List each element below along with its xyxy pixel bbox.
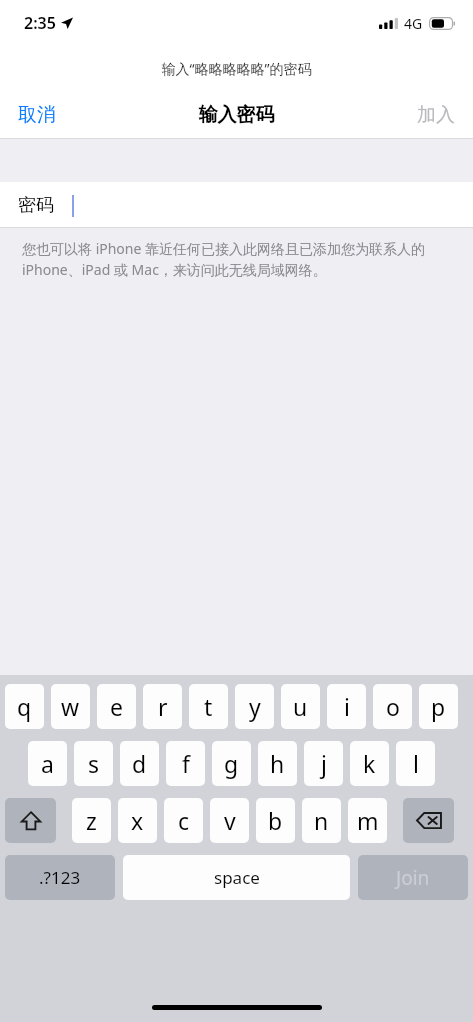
- staticText: y: [249, 691, 261, 722]
- staticText: Join: [396, 865, 430, 891]
- button[interactable]: m: [348, 798, 387, 843]
- staticText: 密码: [18, 194, 54, 217]
- staticText: v: [224, 805, 236, 836]
- button[interactable]: i: [327, 684, 366, 729]
- button[interactable]: b: [256, 798, 295, 843]
- button[interactable]: l: [396, 741, 435, 786]
- button[interactable]: q: [5, 684, 44, 729]
- staticText: .?123: [39, 866, 81, 889]
- staticText: 取消: [18, 103, 56, 127]
- staticText: 4G: [404, 14, 423, 33]
- staticText: z: [86, 805, 97, 836]
- button[interactable]: f: [166, 741, 205, 786]
- staticText: h: [270, 748, 285, 779]
- button[interactable]: s: [74, 741, 113, 786]
- button[interactable]: g: [212, 741, 251, 786]
- staticText: x: [131, 805, 144, 836]
- staticText: space: [214, 866, 260, 889]
- staticText: 2:35: [24, 12, 56, 34]
- button[interactable]: c: [164, 798, 203, 843]
- button[interactable]: r: [143, 684, 182, 729]
- button[interactable]: d: [120, 741, 159, 786]
- button[interactable]: 取消: [0, 93, 74, 137]
- staticText: a: [41, 748, 54, 779]
- button[interactable]: a: [28, 741, 67, 786]
- button[interactable]: u: [281, 684, 320, 729]
- staticText: 加入: [417, 103, 455, 127]
- button[interactable]: w: [51, 684, 90, 729]
- button[interactable]: .?123: [5, 855, 115, 900]
- button[interactable]: space: [123, 855, 350, 900]
- button[interactable]: n: [302, 798, 341, 843]
- button[interactable]: e: [97, 684, 136, 729]
- staticText: t: [204, 691, 213, 722]
- staticText: g: [224, 748, 239, 779]
- button[interactable]: k: [350, 741, 389, 786]
- button[interactable]: Join: [358, 855, 468, 900]
- staticText: d: [132, 748, 147, 779]
- button[interactable]: 密码: [0, 182, 473, 228]
- staticText: p: [431, 691, 446, 722]
- staticText: i: [344, 691, 350, 722]
- button[interactable]: 加入: [399, 93, 473, 137]
- staticText: 输入“略略略略略”的密码: [0, 59, 473, 78]
- staticText: r: [158, 691, 168, 722]
- staticText: k: [363, 748, 376, 779]
- button[interactable]: Shift: [5, 798, 56, 843]
- staticText: e: [110, 691, 123, 722]
- button[interactable]: v: [210, 798, 249, 843]
- staticText: o: [386, 691, 400, 722]
- staticText: u: [293, 691, 308, 722]
- button[interactable]: y: [235, 684, 274, 729]
- staticText: m: [357, 805, 379, 836]
- button[interactable]: t: [189, 684, 228, 729]
- staticText: j: [321, 748, 327, 779]
- staticText: q: [17, 691, 32, 722]
- button[interactable]: o: [373, 684, 412, 729]
- staticText: b: [268, 805, 283, 836]
- staticText: c: [178, 805, 190, 836]
- staticText: 您也可以将 iPhone 靠近任何已接入此网络且已添加您为联系人的 iPhone…: [22, 239, 459, 279]
- staticText: w: [61, 691, 80, 722]
- button[interactable]: j: [304, 741, 343, 786]
- button[interactable]: h: [258, 741, 297, 786]
- staticText: l: [413, 748, 419, 779]
- staticText: 输入密码: [0, 103, 473, 127]
- button[interactable]: x: [118, 798, 157, 843]
- button[interactable]: Backspace: [403, 798, 454, 843]
- button[interactable]: z: [72, 798, 111, 843]
- staticText: s: [88, 748, 100, 779]
- button[interactable]: p: [419, 684, 458, 729]
- staticText: f: [182, 748, 190, 779]
- staticText: n: [314, 805, 329, 836]
